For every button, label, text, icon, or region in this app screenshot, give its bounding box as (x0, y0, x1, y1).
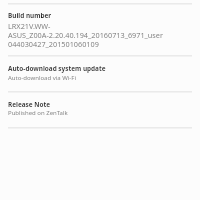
button[interactable]: Auto-download system update (0, 57, 200, 91)
staticText: Auto-download via Wi-Fi (8, 74, 76, 82)
staticText: Release Note (8, 100, 51, 109)
button[interactable]: Build number (0, 5, 200, 55)
staticText: Published on ZenTalk (8, 109, 68, 117)
staticText: Auto-download system update (8, 64, 106, 73)
staticText: LRX21V.WW- ASUS_Z00A-2.20.40.194_2016071… (8, 21, 163, 49)
staticText: Build number (8, 11, 52, 20)
button[interactable]: Release Note (0, 93, 200, 127)
